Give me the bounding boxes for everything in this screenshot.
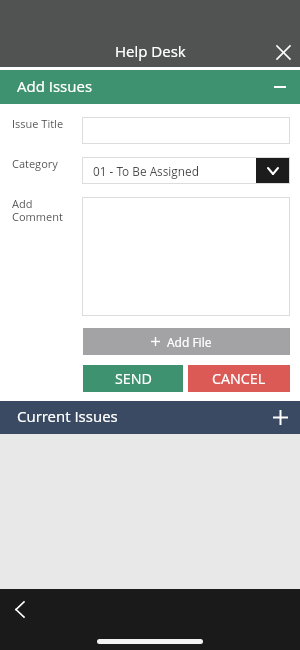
button[interactable]: Close [265, 34, 300, 70]
staticText: 01 - To Be Assigned [93, 163, 199, 179]
button[interactable]: Current Issues [0, 401, 300, 434]
staticText: Add File [167, 334, 212, 350]
button[interactable]: Open category dropdown [256, 158, 290, 183]
button[interactable]: Back [4, 593, 36, 625]
button[interactable]: SEND [83, 365, 183, 392]
staticText: SEND [115, 369, 152, 388]
staticText: Issue Title [12, 116, 82, 131]
staticText: Add Comment [12, 196, 82, 224]
button[interactable]: 01 - To Be Assigned [82, 157, 290, 184]
button[interactable] [82, 117, 290, 144]
button[interactable] [82, 197, 290, 316]
staticText: Help Desk [115, 41, 186, 61]
staticText: CANCEL [212, 369, 266, 388]
button[interactable]: CANCEL [188, 365, 290, 392]
staticText: Current Issues [17, 406, 118, 426]
staticText: Add Issues [17, 76, 93, 96]
button[interactable]: Add File [83, 328, 290, 355]
button[interactable]: Add Issues [0, 70, 300, 104]
staticText: Category [12, 156, 82, 171]
